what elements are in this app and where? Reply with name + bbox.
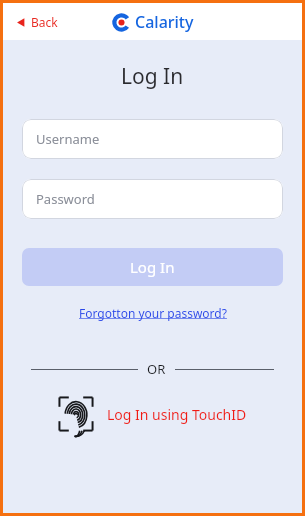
button[interactable]: Log In bbox=[22, 248, 283, 286]
other: Log In using TouchID bbox=[58, 396, 94, 432]
button[interactable]: Back bbox=[11, 10, 62, 34]
staticText: Log In bbox=[130, 257, 175, 277]
button[interactable]: Forgotton your password? bbox=[73, 303, 233, 323]
staticText: Log In bbox=[121, 62, 184, 91]
staticText: Log In using TouchID bbox=[107, 405, 247, 424]
staticText: Calarity bbox=[135, 11, 194, 33]
staticText: OR bbox=[147, 360, 166, 378]
staticText: Forgotton your password? bbox=[79, 305, 227, 321]
button[interactable]: Username bbox=[22, 119, 283, 159]
staticText: Password bbox=[36, 190, 95, 208]
staticText: Username bbox=[36, 130, 100, 148]
button[interactable]: Password bbox=[22, 179, 283, 219]
staticText: Back bbox=[31, 14, 58, 30]
button[interactable]: Log In using TouchID bbox=[52, 392, 253, 436]
